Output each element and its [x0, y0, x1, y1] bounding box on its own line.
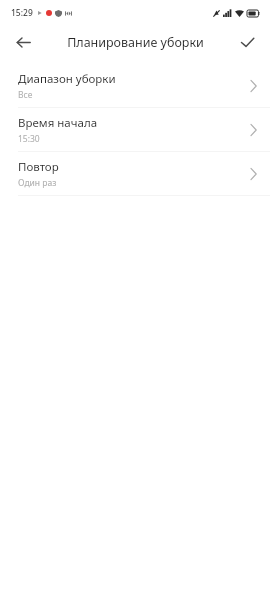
button[interactable]: Back [9, 28, 37, 56]
staticText: Повтор [18, 159, 59, 175]
button[interactable]: Confirm [233, 28, 261, 56]
staticText: Диапазон уборки [18, 71, 116, 87]
staticText: Время начала [18, 115, 98, 131]
button[interactable]: Диапазон уборки [0, 64, 270, 107]
button[interactable]: Время начала [0, 108, 270, 151]
staticText: Все [18, 89, 33, 101]
staticText: Один раз [18, 177, 57, 189]
button[interactable]: Повтор [0, 152, 270, 195]
staticText: 15:30 [18, 133, 40, 145]
staticText: 15:29 [11, 7, 33, 19]
staticText: Планирование уборки [67, 34, 204, 51]
